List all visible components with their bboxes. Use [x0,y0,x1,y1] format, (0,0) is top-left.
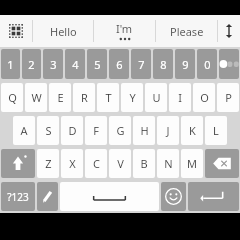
button[interactable]: Space [60,182,159,211]
button[interactable]: Expand suggestions [218,15,240,47]
staticText: S [45,123,52,138]
button[interactable]: 2 [22,49,41,79]
button[interactable]: X [61,149,83,178]
button[interactable]: 1 [1,49,20,79]
button[interactable]: Backspace [205,149,239,178]
staticText: 8 [160,57,167,72]
button[interactable]: C [85,149,107,178]
button[interactable]: Enter [188,182,239,211]
button[interactable]: W [25,83,47,112]
button[interactable]: Hello [33,15,93,47]
staticText: D [68,123,77,138]
staticText: A [20,123,28,138]
staticText: 1 [7,57,14,72]
staticText: 0 [204,57,211,72]
staticText: X [69,156,76,171]
staticText: 6 [116,57,123,72]
button[interactable]: N [157,149,179,178]
button[interactable]: 7 [131,49,151,79]
staticText: W [31,90,42,105]
button[interactable]: 5 [87,49,107,79]
button[interactable]: 0 [197,49,217,79]
button[interactable]: V [109,149,131,178]
staticText: T [105,90,112,105]
button[interactable]: Q [1,83,23,112]
button[interactable]: I'm [94,15,155,47]
button[interactable]: E [49,83,71,112]
button[interactable]: 6 [109,49,129,79]
button[interactable]: L [205,116,227,145]
staticText: B [140,156,148,171]
button[interactable]: 4 [65,49,85,79]
button[interactable]: 8 [153,49,173,79]
staticText: Hello [50,24,77,39]
button[interactable]: J [157,116,179,145]
button[interactable]: ?123 [1,182,35,211]
staticText: O [200,90,209,105]
staticText: 7 [138,57,145,72]
staticText: N [164,156,173,171]
staticText: ?123 [7,190,29,204]
staticText: F [93,123,99,138]
button[interactable]: P [217,83,239,112]
staticText: I [178,90,182,105]
staticText: 9 [182,57,189,72]
staticText: V [117,156,124,171]
button[interactable]: D [61,116,83,145]
staticText: L [213,123,219,138]
button[interactable]: Handwriting [37,182,58,211]
staticText: Q [8,90,17,105]
button[interactable]: I [169,83,191,112]
staticText: Y [129,90,136,105]
staticText: U [152,90,161,105]
button[interactable]: Z [37,149,59,178]
staticText: R [81,90,88,105]
button[interactable]: A [13,116,35,145]
staticText: H [140,123,149,138]
staticText: 4 [72,57,79,72]
button[interactable]: R [73,83,95,112]
button[interactable]: S [37,116,59,145]
button[interactable]: Emoji [161,182,186,211]
button[interactable]: Delete [219,49,239,79]
button[interactable]: F [85,116,107,145]
staticText: I'm [116,21,133,36]
button[interactable]: Input methods [0,15,32,47]
staticText: K [189,123,196,138]
staticText: 2 [28,57,35,72]
button[interactable]: 3 [43,49,63,79]
button[interactable]: G [109,116,131,145]
staticText: Please [170,24,204,39]
staticText: E [57,90,64,105]
staticText: G [116,123,125,138]
staticText: C [93,156,100,171]
staticText: 5 [94,57,101,72]
button[interactable]: Please [156,15,217,47]
button[interactable]: 9 [175,49,195,79]
staticText: Z [45,156,52,171]
staticText: M [187,156,197,171]
button[interactable]: K [181,116,203,145]
button[interactable]: B [133,149,155,178]
button[interactable]: O [193,83,215,112]
button[interactable]: Shift [1,149,35,178]
staticText: P [225,90,232,105]
button[interactable]: H [133,116,155,145]
button[interactable]: T [97,83,119,112]
button[interactable]: Y [121,83,143,112]
button[interactable]: M [181,149,203,178]
staticText: 3 [50,57,57,72]
button[interactable]: U [145,83,167,112]
staticText: J [166,123,170,138]
